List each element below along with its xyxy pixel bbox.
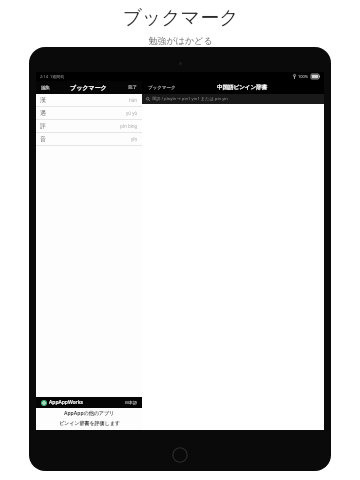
staticText: 漢 <box>40 96 46 104</box>
button[interactable]: 音 <box>36 133 142 146</box>
staticText: 遇 <box>40 109 46 117</box>
staticText: yīn <box>131 136 138 142</box>
staticText: ブックマーク <box>70 84 107 92</box>
staticText: 100% <box>298 74 309 79</box>
staticText: yù yù <box>126 110 138 116</box>
staticText: 編集 <box>41 85 50 91</box>
staticText: pín bìng <box>120 123 138 129</box>
button[interactable]: 漢 <box>36 94 142 107</box>
staticText: 評 <box>40 122 46 130</box>
staticText: AppAppWorks <box>49 399 83 406</box>
staticText: AppAppの他のアプリ <box>64 410 115 417</box>
staticText: 勉強がはかどる <box>148 35 213 46</box>
staticText: 中国語ピンイン辞書 <box>217 84 268 91</box>
staticText: 日本語 <box>125 400 137 405</box>
staticText: 2:14 1週間前 <box>40 74 65 79</box>
button[interactable]: 漢語 / pīnyīn → pin1 yin1 または pin yin <box>142 94 324 104</box>
other: Home <box>172 447 188 463</box>
button[interactable]: AppAppWorks <box>36 397 142 408</box>
staticText: 音 <box>40 135 46 143</box>
button[interactable]: 編集 <box>40 84 51 92</box>
staticText: ブックマーク <box>148 85 176 91</box>
button[interactable]: Back to ブックマーク <box>147 84 177 92</box>
button[interactable]: 評 <box>36 120 142 133</box>
staticText: 漢語 / pīnyīn → pin1 yin1 または pin yin <box>152 96 228 102</box>
staticText: hàn <box>129 97 138 103</box>
button[interactable]: 完了 <box>127 84 138 92</box>
staticText: ブックマーク <box>122 6 239 30</box>
staticText: 完了 <box>128 85 137 91</box>
button[interactable]: 遇 <box>36 107 142 120</box>
staticText: ピンイン辞書を評価します <box>59 420 120 426</box>
